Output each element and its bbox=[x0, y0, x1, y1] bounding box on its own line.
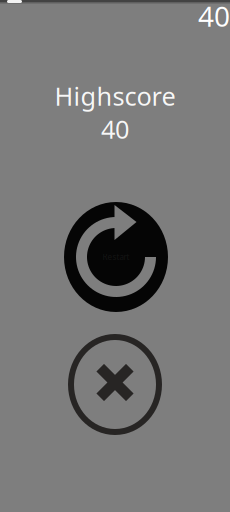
staticText: Highscore bbox=[54, 79, 175, 113]
button[interactable]: Restart bbox=[64, 202, 168, 312]
staticText: Restart bbox=[102, 252, 129, 262]
button[interactable]: Close bbox=[68, 334, 162, 435]
staticText: 40 bbox=[101, 112, 129, 146]
staticText: 40 bbox=[198, 0, 230, 35]
